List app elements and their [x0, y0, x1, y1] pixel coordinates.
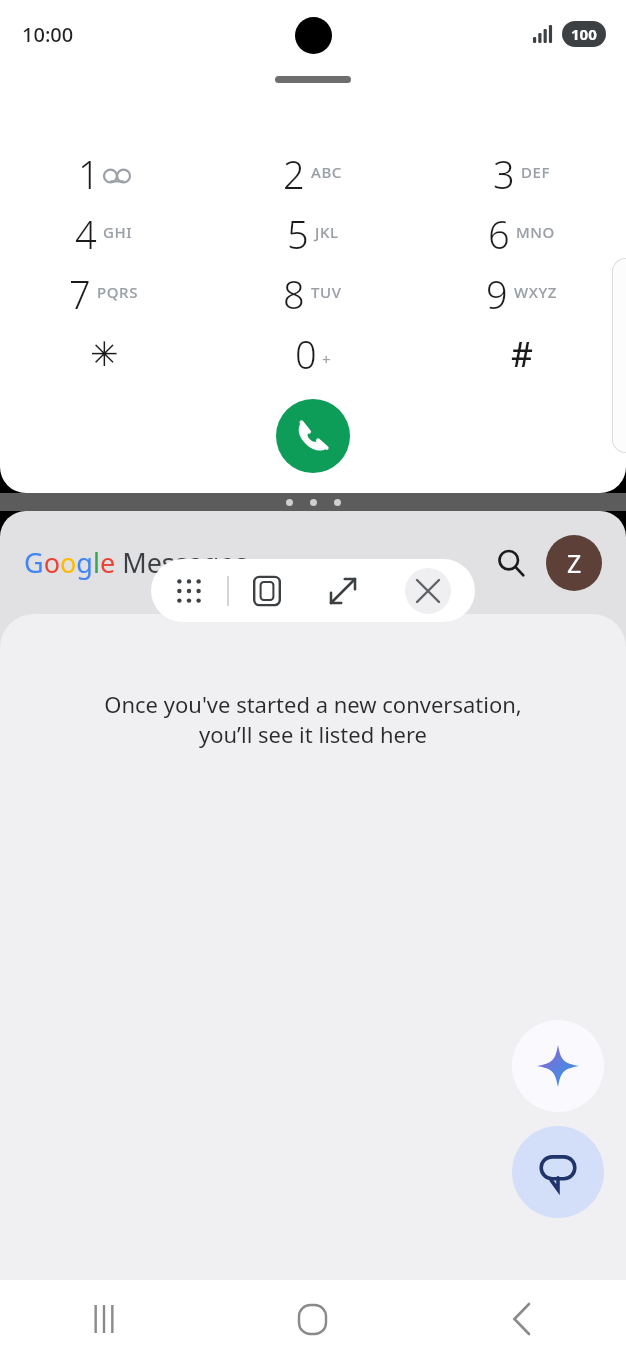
staticText: TUV: [311, 282, 342, 302]
staticText: WXYZ: [514, 282, 558, 302]
staticText: 5: [287, 208, 309, 260]
staticText: 8: [283, 268, 305, 320]
staticText: GHI: [103, 222, 133, 242]
button[interactable]: Close: [381, 559, 475, 622]
button[interactable]: 2: [208, 144, 417, 204]
staticText: ✳: [90, 334, 119, 374]
staticText: 3: [493, 148, 515, 200]
staticText: 6: [488, 208, 510, 260]
staticText: 9: [486, 268, 508, 320]
button[interactable]: Account: [546, 535, 602, 591]
button[interactable]: 3: [417, 144, 626, 204]
button[interactable]: 7: [0, 264, 208, 324]
button[interactable]: Gemini: [512, 1020, 604, 1112]
button[interactable]: 5: [208, 204, 417, 264]
staticText: 1: [78, 148, 100, 200]
button[interactable]: Move window: [151, 559, 227, 622]
button[interactable]: Home: [208, 1280, 417, 1358]
button[interactable]: 6: [417, 204, 626, 264]
button[interactable]: 0: [208, 324, 417, 384]
staticText: 0: [295, 328, 317, 380]
button[interactable]: Expand to full screen: [305, 559, 381, 622]
staticText: MNO: [516, 222, 555, 242]
button[interactable]: 8: [208, 264, 417, 324]
button[interactable]: Recent apps: [0, 1280, 208, 1358]
button[interactable]: Edge panel: [612, 258, 626, 453]
staticText: 4: [75, 208, 97, 260]
staticText: Once you've started a new conversation, …: [30, 689, 596, 749]
button[interactable]: Start chat: [512, 1126, 604, 1218]
staticText: Google Messages: [24, 544, 248, 581]
button[interactable]: ✳: [0, 324, 208, 384]
button[interactable]: 1: [0, 144, 208, 204]
staticText: ABC: [311, 162, 342, 182]
staticText: JKL: [315, 222, 339, 242]
button[interactable]: Call: [276, 399, 350, 473]
staticText: DEF: [521, 162, 551, 182]
button[interactable]: 9: [417, 264, 626, 324]
staticText: Z: [567, 546, 582, 580]
button[interactable]: Back: [417, 1280, 626, 1358]
button[interactable]: Search: [488, 540, 534, 586]
button[interactable]: #: [417, 324, 626, 384]
staticText: 7: [69, 268, 91, 320]
staticText: #: [511, 331, 533, 377]
button[interactable]: 4: [0, 204, 208, 264]
staticText: 10:00: [22, 21, 74, 48]
staticText: 100: [571, 24, 597, 44]
staticText: 2: [283, 148, 305, 200]
button[interactable]: Switch to phone window: [229, 559, 305, 622]
staticText: PQRS: [97, 282, 139, 302]
staticText: +: [322, 349, 331, 369]
